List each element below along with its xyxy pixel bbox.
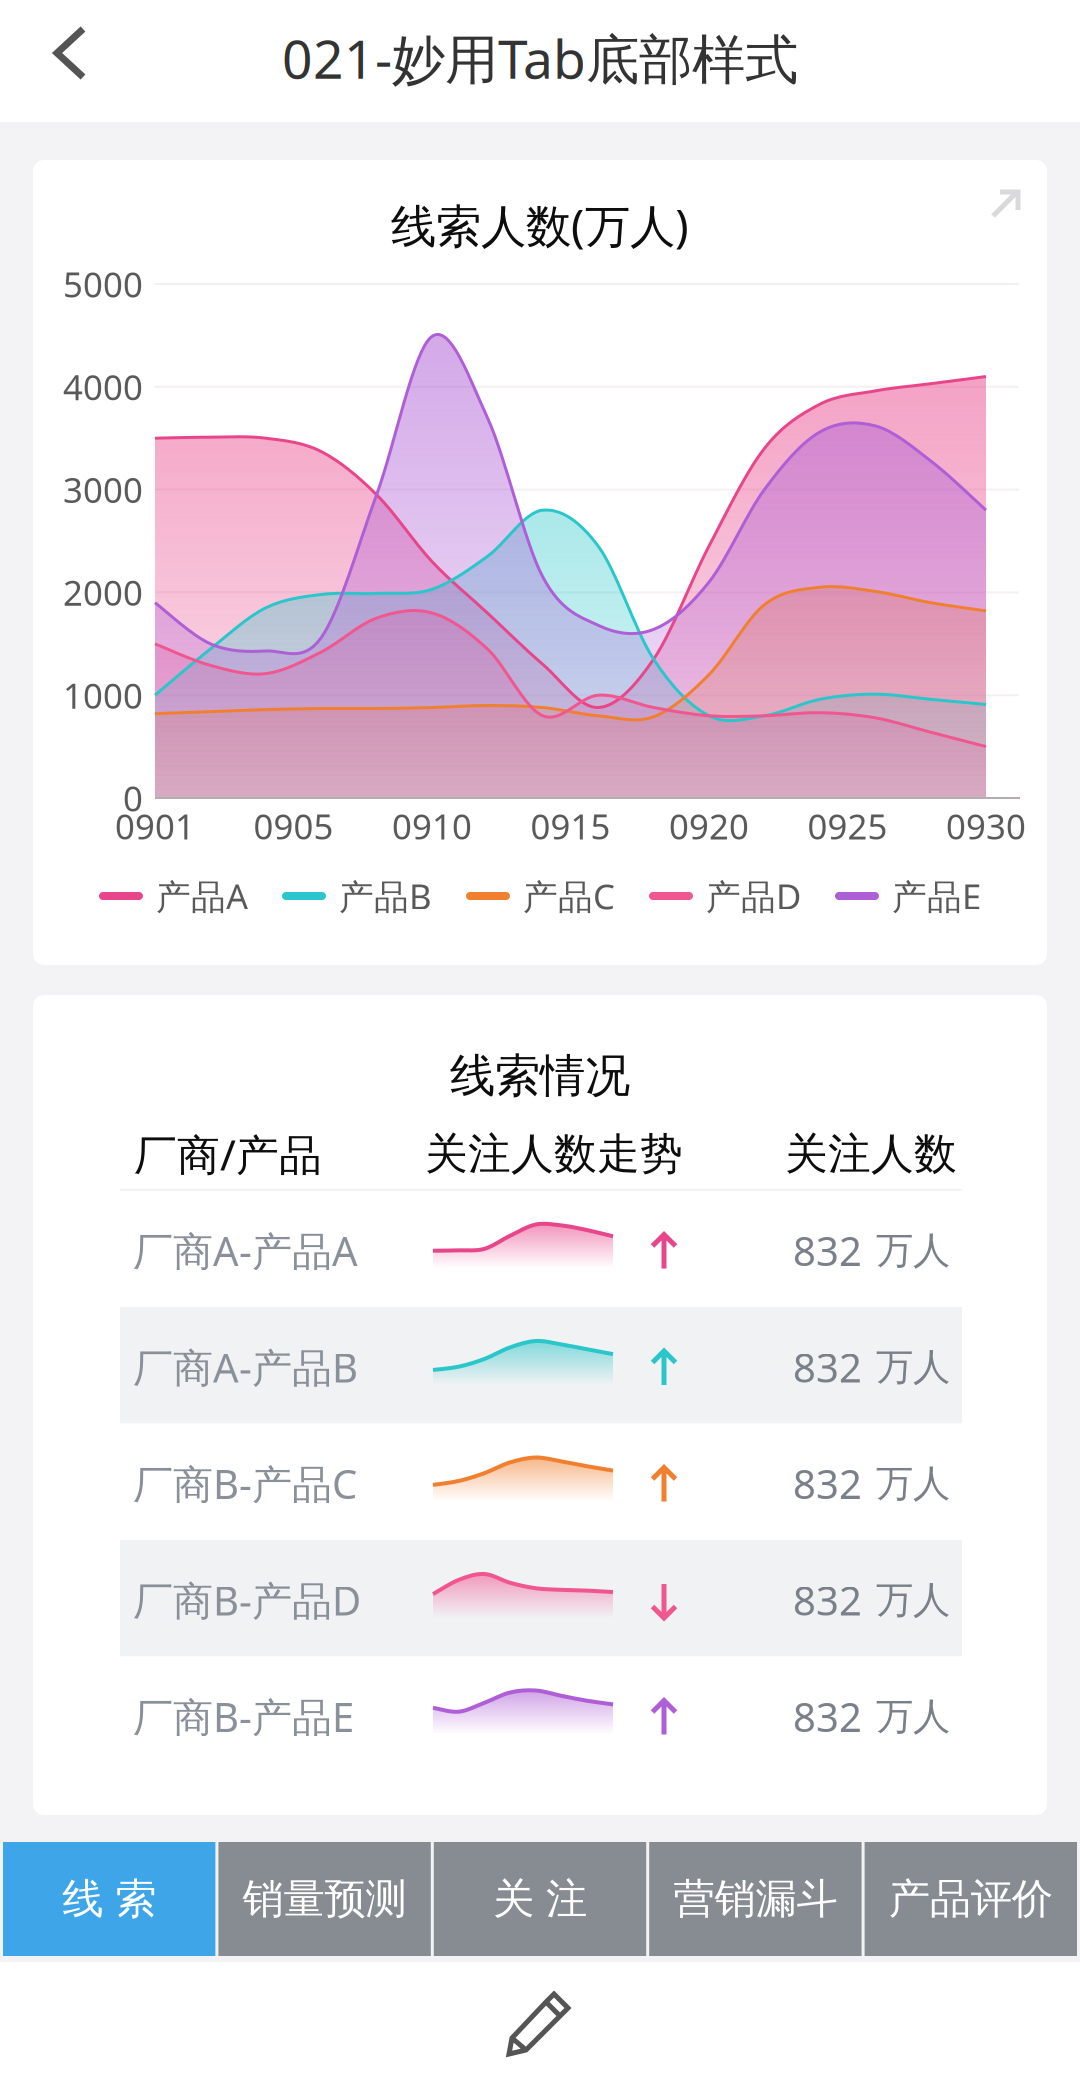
staticText: 832: [793, 1690, 862, 1743]
staticText: 厂商/产品: [134, 1126, 322, 1182]
button[interactable]: Back: [0, 0, 1080, 122]
staticText: 营销漏斗: [673, 1874, 837, 1924]
staticText: 021-妙用Tab底部样式: [282, 23, 798, 93]
staticText: 万人: [876, 1461, 950, 1506]
staticText: 0925: [807, 803, 887, 849]
staticText: 厂商A-产品B: [133, 1340, 358, 1393]
button[interactable]: 营销漏斗: [649, 1842, 862, 1956]
button[interactable]: 线 索: [3, 1842, 215, 1956]
button[interactable]: 关 注: [434, 1842, 646, 1956]
staticText: 0910: [392, 803, 472, 849]
button[interactable]: 产品评价: [865, 1842, 1077, 1956]
staticText: 产品D: [706, 873, 801, 919]
staticText: 0905: [253, 803, 333, 849]
staticText: 832: [793, 1573, 862, 1626]
staticText: 0920: [669, 803, 749, 849]
staticText: 832: [793, 1340, 862, 1393]
staticText: 832: [793, 1224, 862, 1277]
staticText: 3000: [63, 467, 143, 513]
staticText: 线索情况: [450, 1048, 630, 1104]
staticText: 0930: [946, 803, 1026, 849]
button[interactable]: Edit: [506, 1988, 574, 2062]
staticText: 832: [793, 1457, 862, 1510]
staticText: 销量预测: [243, 1874, 407, 1924]
staticText: 产品A: [156, 873, 248, 919]
staticText: 厂商A-产品A: [133, 1224, 358, 1277]
staticText: 产品E: [892, 873, 981, 919]
staticText: 厂商B-产品D: [133, 1573, 361, 1626]
staticText: 万人: [876, 1577, 950, 1623]
staticText: 厂商B-产品C: [133, 1457, 357, 1510]
staticText: 0901: [115, 803, 195, 849]
staticText: 线 索: [62, 1874, 156, 1924]
staticText: 万人: [876, 1344, 950, 1390]
staticText: 0915: [530, 803, 610, 849]
staticText: 关注人数走势: [425, 1128, 683, 1180]
staticText: 关 注: [493, 1874, 587, 1924]
staticText: 2000: [63, 569, 143, 615]
staticText: 厂商B-产品E: [133, 1690, 354, 1743]
staticText: 产品B: [339, 873, 432, 919]
staticText: 0: [123, 775, 143, 821]
staticText: 万人: [876, 1228, 950, 1273]
staticText: 5000: [63, 261, 143, 307]
staticText: 线索人数(万人): [391, 195, 689, 255]
button[interactable]: 销量预测: [218, 1842, 431, 1956]
staticText: 1000: [63, 672, 143, 718]
staticText: 产品C: [523, 873, 615, 919]
staticText: 4000: [63, 364, 143, 410]
staticText: 产品评价: [889, 1874, 1053, 1924]
staticText: 万人: [876, 1694, 950, 1739]
staticText: 关注人数: [785, 1128, 957, 1180]
